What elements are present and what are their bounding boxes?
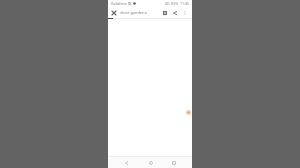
staticText: Vodafone IN [111,1,132,6]
staticText: shoe gardens [120,10,160,16]
button[interactable]: More options [180,8,190,18]
button[interactable]: Share [170,8,180,18]
button[interactable]: Save [160,8,170,18]
staticText: 4G 83% 11:45 [165,1,190,6]
button[interactable]: Recent apps [168,157,179,168]
button[interactable]: Back [121,157,132,168]
button[interactable]: Home [145,157,156,168]
button[interactable]: Close [110,9,117,16]
